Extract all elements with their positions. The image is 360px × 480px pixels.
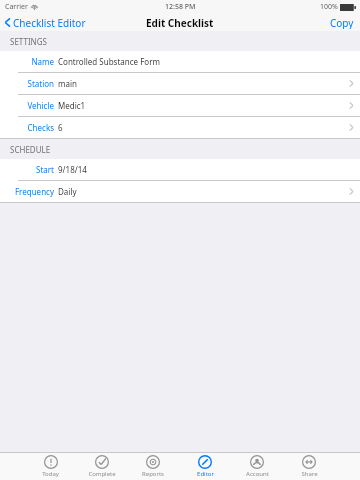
- staticText: Station: [27, 78, 54, 89]
- staticText: 6: [58, 122, 349, 133]
- button[interactable]: Checklist Editor: [0, 14, 92, 31]
- button[interactable]: Account: [231, 453, 283, 480]
- staticText: Checklist Editor: [13, 16, 86, 29]
- staticText: Frequency: [14, 186, 54, 197]
- button[interactable]: Name: [0, 51, 360, 72]
- staticText: Name: [31, 56, 54, 67]
- staticText: Checks: [27, 122, 54, 133]
- staticText: Start: [36, 164, 54, 175]
- staticText: Daily: [58, 186, 349, 197]
- button[interactable]: Frequency: [0, 181, 360, 202]
- button[interactable]: Today: [25, 453, 76, 480]
- staticText: Vehicle: [27, 100, 54, 111]
- staticText: Editor: [197, 470, 214, 478]
- button[interactable]: Station: [0, 73, 360, 94]
- button[interactable]: Copy: [324, 14, 360, 31]
- staticText: Carrier: [5, 2, 28, 12]
- staticText: 100%: [320, 2, 338, 12]
- button[interactable]: Vehicle: [0, 95, 360, 116]
- staticText: 12:58 PM: [165, 2, 196, 12]
- staticText: SCHEDULE: [10, 144, 51, 155]
- staticText: Edit Checklist: [146, 16, 214, 30]
- button[interactable]: Start: [0, 159, 360, 180]
- staticText: Controlled Substance Form: [58, 56, 349, 67]
- staticText: Complete: [88, 470, 116, 478]
- staticText: Copy: [330, 16, 354, 29]
- staticText: Share: [301, 470, 318, 478]
- button[interactable]: Share: [283, 453, 335, 480]
- staticText: 9/18/14: [58, 164, 349, 175]
- button[interactable]: Complete: [76, 453, 127, 480]
- staticText: SETTINGS: [10, 36, 47, 47]
- staticText: main: [58, 78, 349, 89]
- staticText: Medic1: [58, 100, 349, 111]
- staticText: Today: [42, 470, 59, 478]
- button[interactable]: Checks: [0, 117, 360, 138]
- button[interactable]: Editor: [179, 453, 231, 480]
- staticText: Reports: [142, 470, 164, 478]
- button[interactable]: Reports: [127, 453, 179, 480]
- staticText: Account: [246, 470, 269, 478]
